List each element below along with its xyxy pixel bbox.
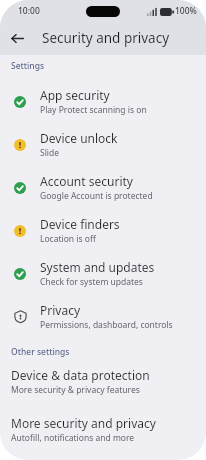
staticText: Device finders bbox=[40, 216, 120, 232]
button[interactable]: Account security bbox=[0, 166, 206, 209]
staticText: Privacy bbox=[40, 302, 81, 318]
button[interactable]: Back bbox=[5, 26, 29, 50]
staticText: 10:00 bbox=[18, 5, 40, 17]
button[interactable]: More security and privacy bbox=[11, 413, 206, 446]
staticText: More security & privacy features bbox=[11, 384, 140, 396]
staticText: Location is off bbox=[40, 233, 96, 245]
button[interactable]: Privacy bbox=[0, 295, 206, 338]
staticText: System and updates bbox=[40, 259, 155, 275]
staticText: Account security bbox=[40, 173, 133, 189]
staticText: Security and privacy bbox=[42, 29, 170, 47]
staticText: Device unlock bbox=[40, 130, 118, 146]
staticText: Device & data protection bbox=[11, 367, 150, 383]
staticText: Other settings bbox=[11, 346, 70, 358]
button[interactable]: System and updates bbox=[0, 252, 206, 295]
staticText: Google Account is protected bbox=[40, 190, 153, 202]
button[interactable]: App security bbox=[0, 80, 206, 123]
staticText: More security and privacy bbox=[11, 415, 156, 431]
staticText: Settings bbox=[11, 60, 45, 72]
staticText: 100% bbox=[175, 5, 197, 17]
button[interactable]: Device & data protection bbox=[11, 365, 206, 398]
button[interactable]: Device unlock bbox=[0, 123, 206, 166]
staticText: Permissions, dashboard, controls bbox=[40, 319, 173, 331]
staticText: Autofill, notifications and more bbox=[11, 432, 135, 444]
staticText: Play Protect scanning is on bbox=[40, 104, 147, 116]
staticText: App security bbox=[40, 87, 110, 103]
staticText: Slide bbox=[40, 147, 60, 159]
button[interactable]: Device finders bbox=[0, 209, 206, 252]
staticText: Check for system updates bbox=[40, 276, 143, 288]
